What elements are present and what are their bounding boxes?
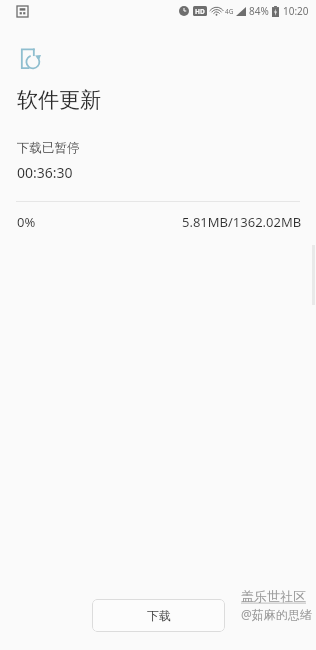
other: Notification: [17, 6, 28, 17]
staticText: HD: [195, 7, 205, 16]
staticText: @茹麻的思绪: [241, 606, 312, 622]
staticText: 0%: [17, 213, 36, 231]
button[interactable]: 下载: [92, 599, 225, 632]
staticText: 84%: [249, 4, 269, 18]
staticText: 盖乐世社区: [241, 588, 306, 604]
staticText: 软件更新: [17, 87, 101, 113]
staticText: 下载已暂停: [17, 140, 80, 156]
staticText: 4G: [225, 7, 234, 16]
staticText: 5.81MB/1362.02MB: [182, 213, 302, 231]
staticText: 00:36:30: [17, 163, 73, 182]
staticText: 10:20: [283, 4, 309, 18]
staticText: 下载: [147, 608, 171, 623]
